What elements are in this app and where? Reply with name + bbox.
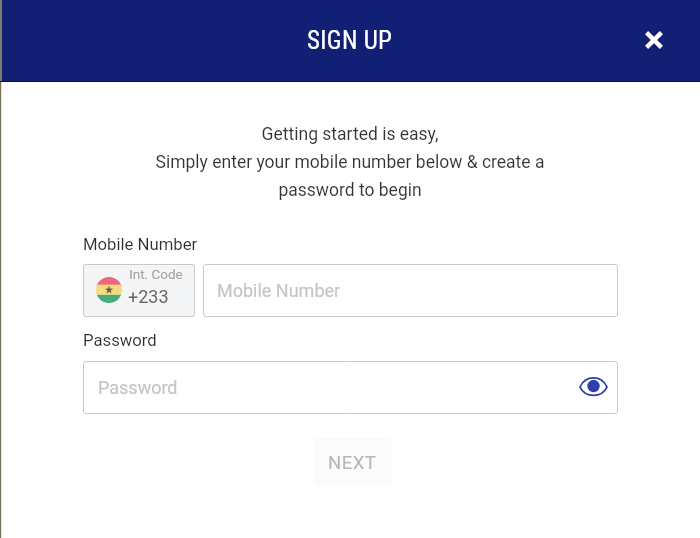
button[interactable]: Mobile Number xyxy=(203,264,618,317)
button[interactable]: NEXT xyxy=(313,438,392,487)
staticText: Int. Code xyxy=(129,266,183,282)
button[interactable]: Password xyxy=(83,361,618,414)
staticText: Password xyxy=(98,377,178,398)
button[interactable]: Show password xyxy=(574,367,612,405)
staticText: NEXT xyxy=(328,452,377,474)
staticText: Getting started is easy, Simply enter yo… xyxy=(0,124,700,200)
staticText: Mobile Number xyxy=(83,235,198,255)
button[interactable]: Int. Code xyxy=(83,264,195,317)
staticText: Password xyxy=(83,331,157,351)
staticText: +233 xyxy=(128,286,169,307)
button[interactable]: Close xyxy=(634,20,674,60)
staticText: Mobile Number xyxy=(217,280,341,301)
staticText: SIGN UP xyxy=(307,26,393,55)
